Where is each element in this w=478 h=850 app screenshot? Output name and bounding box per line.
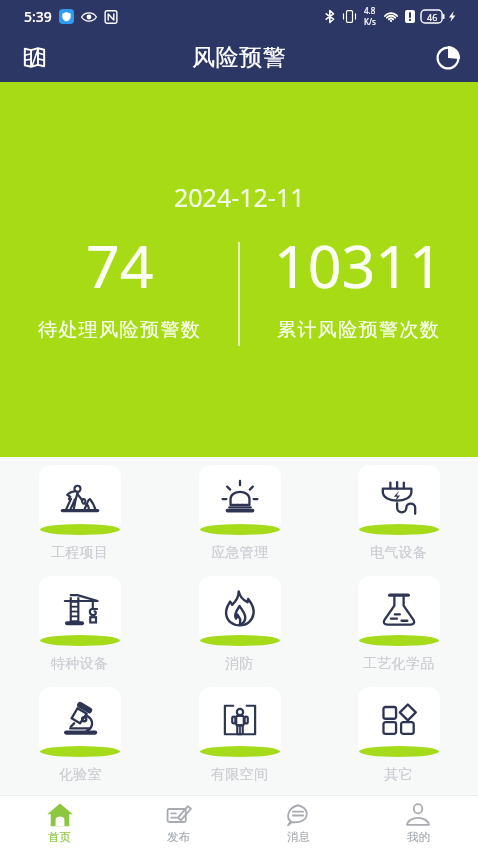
staticText: 首页 [48, 830, 71, 844]
button[interactable]: 有限空间 [160, 687, 319, 784]
staticText: 电气设备 [370, 544, 428, 562]
staticText: 有限空间 [211, 766, 269, 784]
button[interactable]: 我的 [358, 796, 478, 850]
button[interactable]: 特种设备 [0, 576, 160, 673]
staticText: 累计风险预警次数 [277, 318, 441, 342]
staticText: K/s [364, 16, 376, 27]
staticText: 我的 [407, 830, 430, 844]
button[interactable]: 电气设备 [319, 465, 478, 562]
button[interactable]: 消息 [238, 796, 358, 850]
button[interactable]: Statistics [429, 39, 467, 77]
staticText: 其它 [384, 766, 413, 784]
staticText: 化验室 [59, 766, 102, 784]
staticText: 风险预警 [192, 43, 287, 72]
staticText: 待处理风险预警数 [38, 318, 202, 342]
staticText: 10311 [274, 225, 443, 305]
staticText: 46 [427, 11, 438, 23]
staticText: 消防 [225, 655, 254, 673]
button[interactable]: Map [15, 38, 53, 76]
button[interactable]: 发布 [119, 796, 238, 850]
button[interactable]: 其它 [319, 687, 478, 784]
staticText: 工程项目 [51, 544, 109, 562]
button[interactable]: 首页 [0, 796, 119, 850]
staticText: 2024-12-11 [174, 180, 305, 214]
button[interactable]: 应急管理 [160, 465, 319, 562]
button[interactable]: 消防 [160, 576, 319, 673]
staticText: 工艺化学品 [363, 655, 435, 673]
staticText: 应急管理 [211, 544, 269, 562]
button[interactable]: 工艺化学品 [319, 576, 478, 673]
button[interactable]: 工程项目 [0, 465, 160, 562]
staticText: 发布 [167, 830, 190, 844]
staticText: 74 [86, 225, 154, 305]
button[interactable]: 化验室 [0, 687, 160, 784]
staticText: 消息 [287, 830, 310, 844]
staticText: 特种设备 [51, 655, 109, 673]
staticText: 4.8 [364, 5, 376, 16]
staticText: 5:39 [24, 7, 52, 26]
